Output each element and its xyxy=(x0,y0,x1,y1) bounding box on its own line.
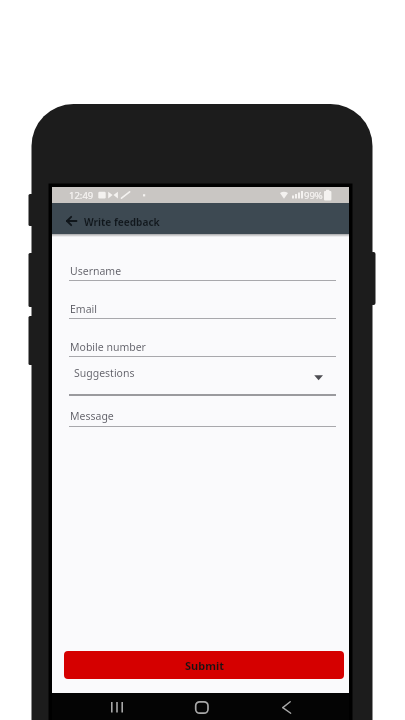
staticText: Suggestions xyxy=(74,366,135,380)
staticText: 99% xyxy=(304,189,323,202)
button[interactable] xyxy=(188,696,216,718)
button[interactable]: Submit xyxy=(64,651,344,679)
staticText: Email xyxy=(70,302,97,316)
button[interactable] xyxy=(269,696,297,718)
staticText: Username xyxy=(70,264,122,278)
staticText: Submit xyxy=(185,658,224,673)
staticText: Write feedback xyxy=(84,215,160,229)
staticText: Message xyxy=(70,409,114,423)
button[interactable] xyxy=(64,359,337,385)
button[interactable] xyxy=(103,696,131,718)
button[interactable]: Mobile number xyxy=(70,339,270,354)
button[interactable]: Email xyxy=(70,301,270,316)
staticText: 12:49 xyxy=(69,189,94,202)
button[interactable]: Message xyxy=(70,408,270,423)
button[interactable]: Username xyxy=(70,263,270,278)
button[interactable]: Suggestions xyxy=(74,365,274,380)
staticText: Mobile number xyxy=(70,340,146,354)
button[interactable] xyxy=(60,213,78,229)
